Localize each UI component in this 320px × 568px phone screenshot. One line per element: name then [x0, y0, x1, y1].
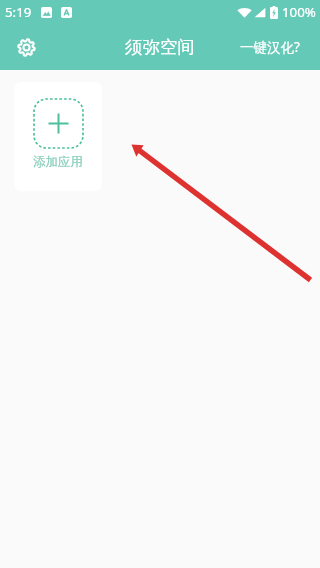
staticText: 须弥空间 [125, 36, 195, 58]
staticText: 一键汉化? [240, 38, 300, 56]
staticText: 100% [282, 3, 316, 21]
button[interactable]: 添加应用 [14, 82, 102, 191]
button[interactable]: 一键汉化? [228, 28, 320, 66]
staticText: 5:19 [5, 3, 32, 21]
staticText: 添加应用 [33, 154, 83, 170]
button[interactable]: Settings [8, 29, 44, 65]
